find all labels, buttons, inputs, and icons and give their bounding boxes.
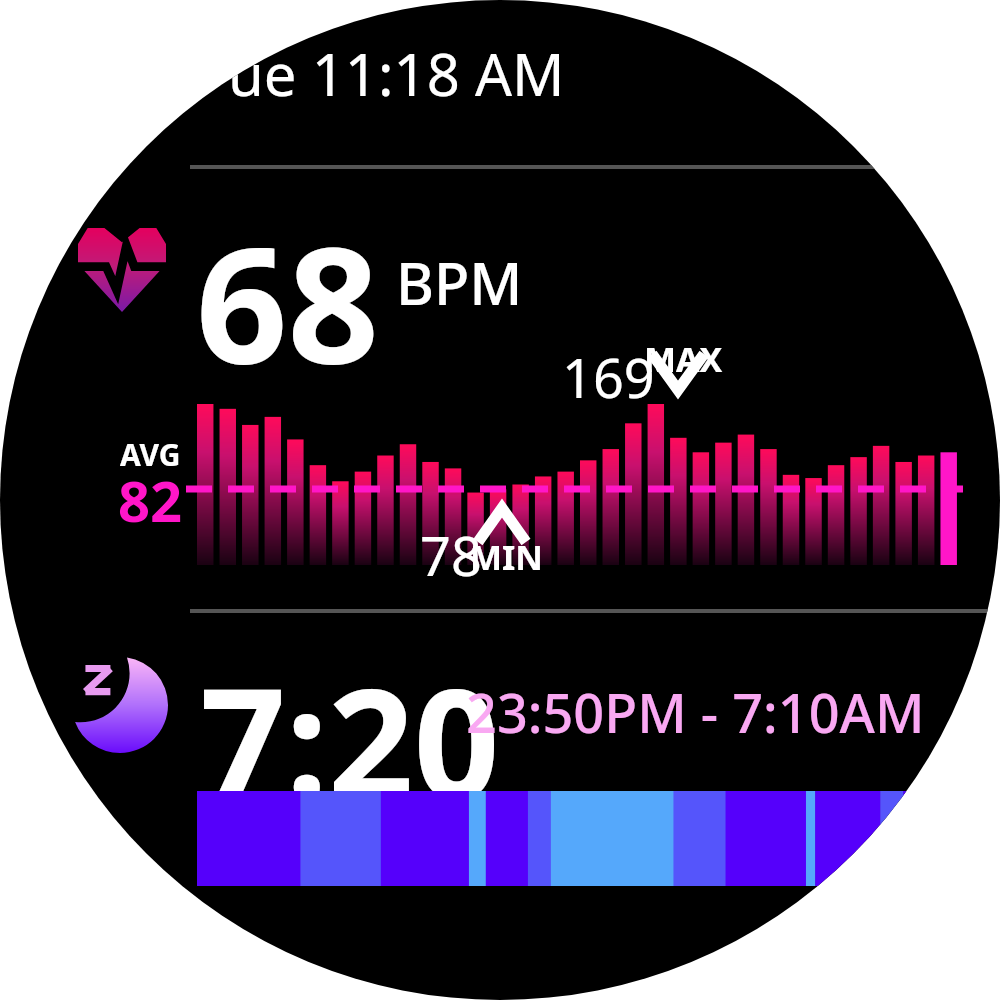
button[interactable]: Health summary: heart rate and sleep (0, 0, 1000, 1000)
